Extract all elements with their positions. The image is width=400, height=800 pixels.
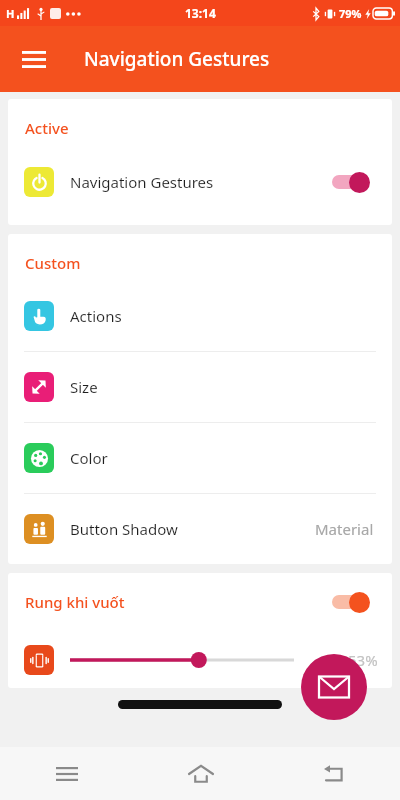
- button[interactable]: Compose email: [301, 654, 367, 720]
- button[interactable]: Gesture bar: [118, 700, 282, 709]
- button[interactable]: Navigation Gestures: [8, 138, 392, 225]
- button[interactable]: Back: [267, 747, 400, 800]
- staticText: 53%: [348, 650, 378, 670]
- staticText: Navigation Gestures: [70, 172, 214, 192]
- button[interactable]: Color: [8, 423, 392, 493]
- staticText: Color: [70, 448, 108, 468]
- button[interactable]: Actions: [8, 281, 392, 351]
- button[interactable]: Recent apps: [0, 747, 134, 800]
- staticText: Rung khi vuốt: [25, 592, 125, 612]
- button[interactable]: Toggle: [330, 589, 374, 615]
- button[interactable]: Button Shadow: [8, 494, 392, 564]
- staticText: Custom: [25, 253, 81, 273]
- staticText: 13:14: [185, 5, 216, 21]
- button[interactable]: Open navigation drawer: [12, 37, 56, 81]
- button[interactable]: Size: [8, 352, 392, 422]
- button[interactable]: Toggle: [330, 169, 374, 195]
- button[interactable]: Vibration strength slider: [70, 647, 294, 673]
- staticText: H: [6, 6, 15, 21]
- staticText: Active: [25, 118, 69, 138]
- staticText: Navigation Gestures: [84, 46, 270, 72]
- button[interactable]: Home: [134, 747, 267, 800]
- staticText: Material: [315, 519, 374, 539]
- staticText: Size: [70, 377, 98, 397]
- button[interactable]: Rung khi vuốt: [8, 573, 392, 631]
- staticText: 79%: [339, 6, 362, 21]
- staticText: Actions: [70, 306, 122, 326]
- staticText: Button Shadow: [70, 519, 178, 539]
